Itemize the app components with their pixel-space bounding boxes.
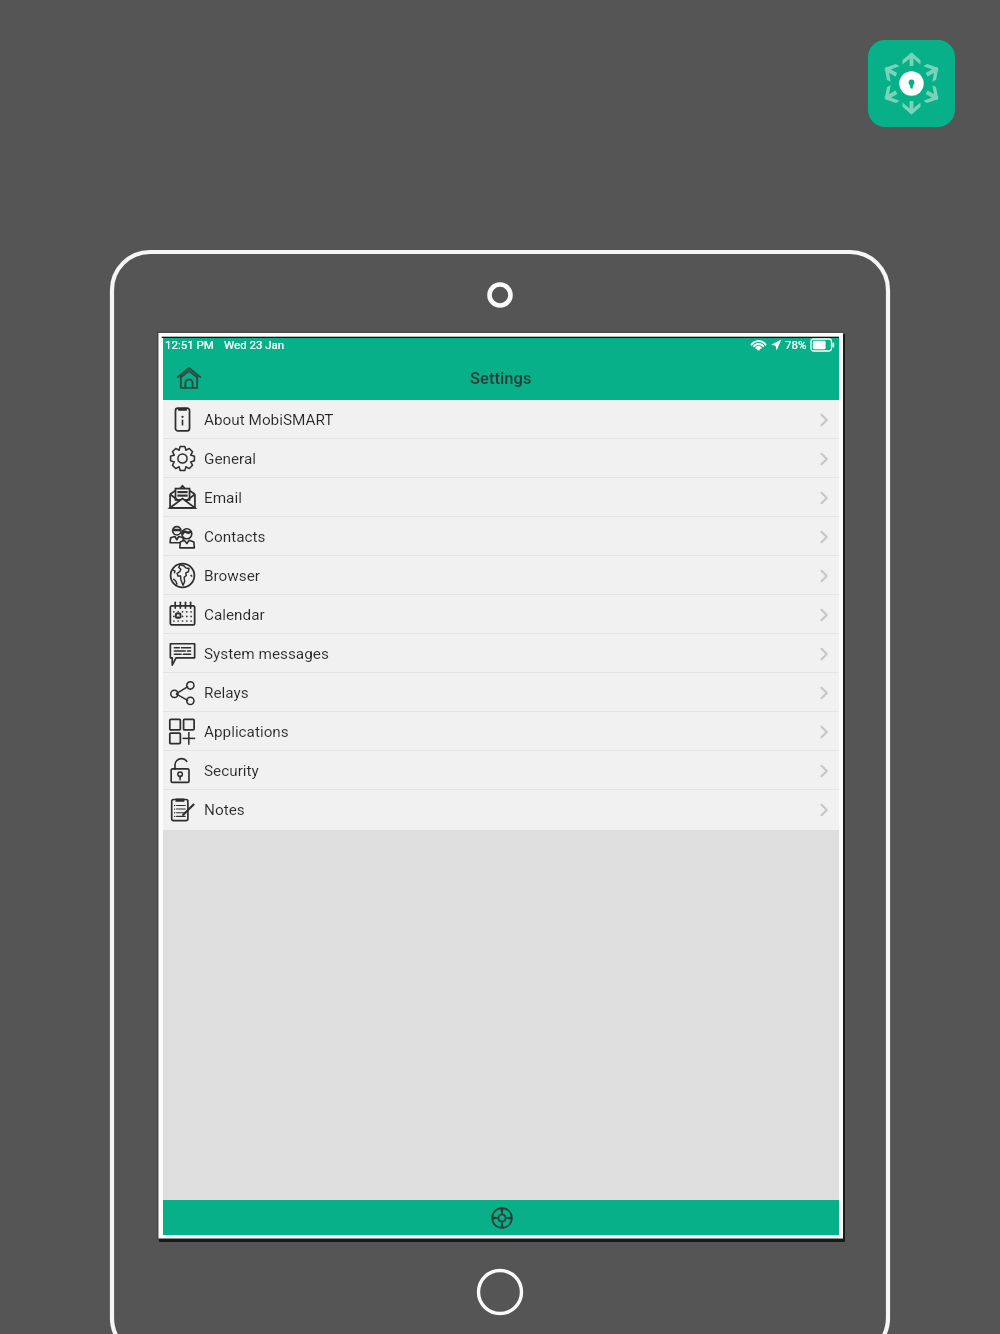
staticText: Calendar	[204, 606, 265, 624]
staticText: Applications	[204, 723, 289, 741]
staticText: General	[204, 450, 257, 468]
staticText: Email	[204, 489, 242, 507]
staticText: Browser	[204, 567, 260, 585]
staticText: Security	[204, 762, 259, 780]
button[interactable]: Relays	[163, 673, 839, 712]
button[interactable]: Browser	[163, 556, 839, 595]
staticText: 78%	[785, 338, 807, 351]
button[interactable]: System messages	[163, 634, 839, 673]
button[interactable]: MobiSMART	[868, 40, 955, 127]
staticText: 12:51 PM	[165, 338, 214, 351]
button[interactable]: Applications	[163, 712, 839, 751]
button[interactable]: Home	[169, 360, 209, 400]
button[interactable]: Contacts	[163, 517, 839, 556]
staticText: Settings	[470, 369, 532, 388]
staticText: System messages	[204, 645, 329, 663]
staticText: About MobiSMART	[204, 411, 334, 429]
staticText: Contacts	[204, 528, 266, 546]
button[interactable]: Security	[163, 751, 839, 790]
staticText: Wed 23 Jan	[224, 338, 285, 351]
button[interactable]: Email	[163, 478, 839, 517]
button[interactable]: About MobiSMART	[163, 400, 839, 439]
staticText: Relays	[204, 684, 249, 702]
button[interactable]: Navigation	[484, 1200, 519, 1235]
button[interactable]: General	[163, 439, 839, 478]
button[interactable]: Calendar	[163, 595, 839, 634]
button[interactable]: Notes	[163, 790, 839, 829]
staticText: Notes	[204, 801, 245, 819]
